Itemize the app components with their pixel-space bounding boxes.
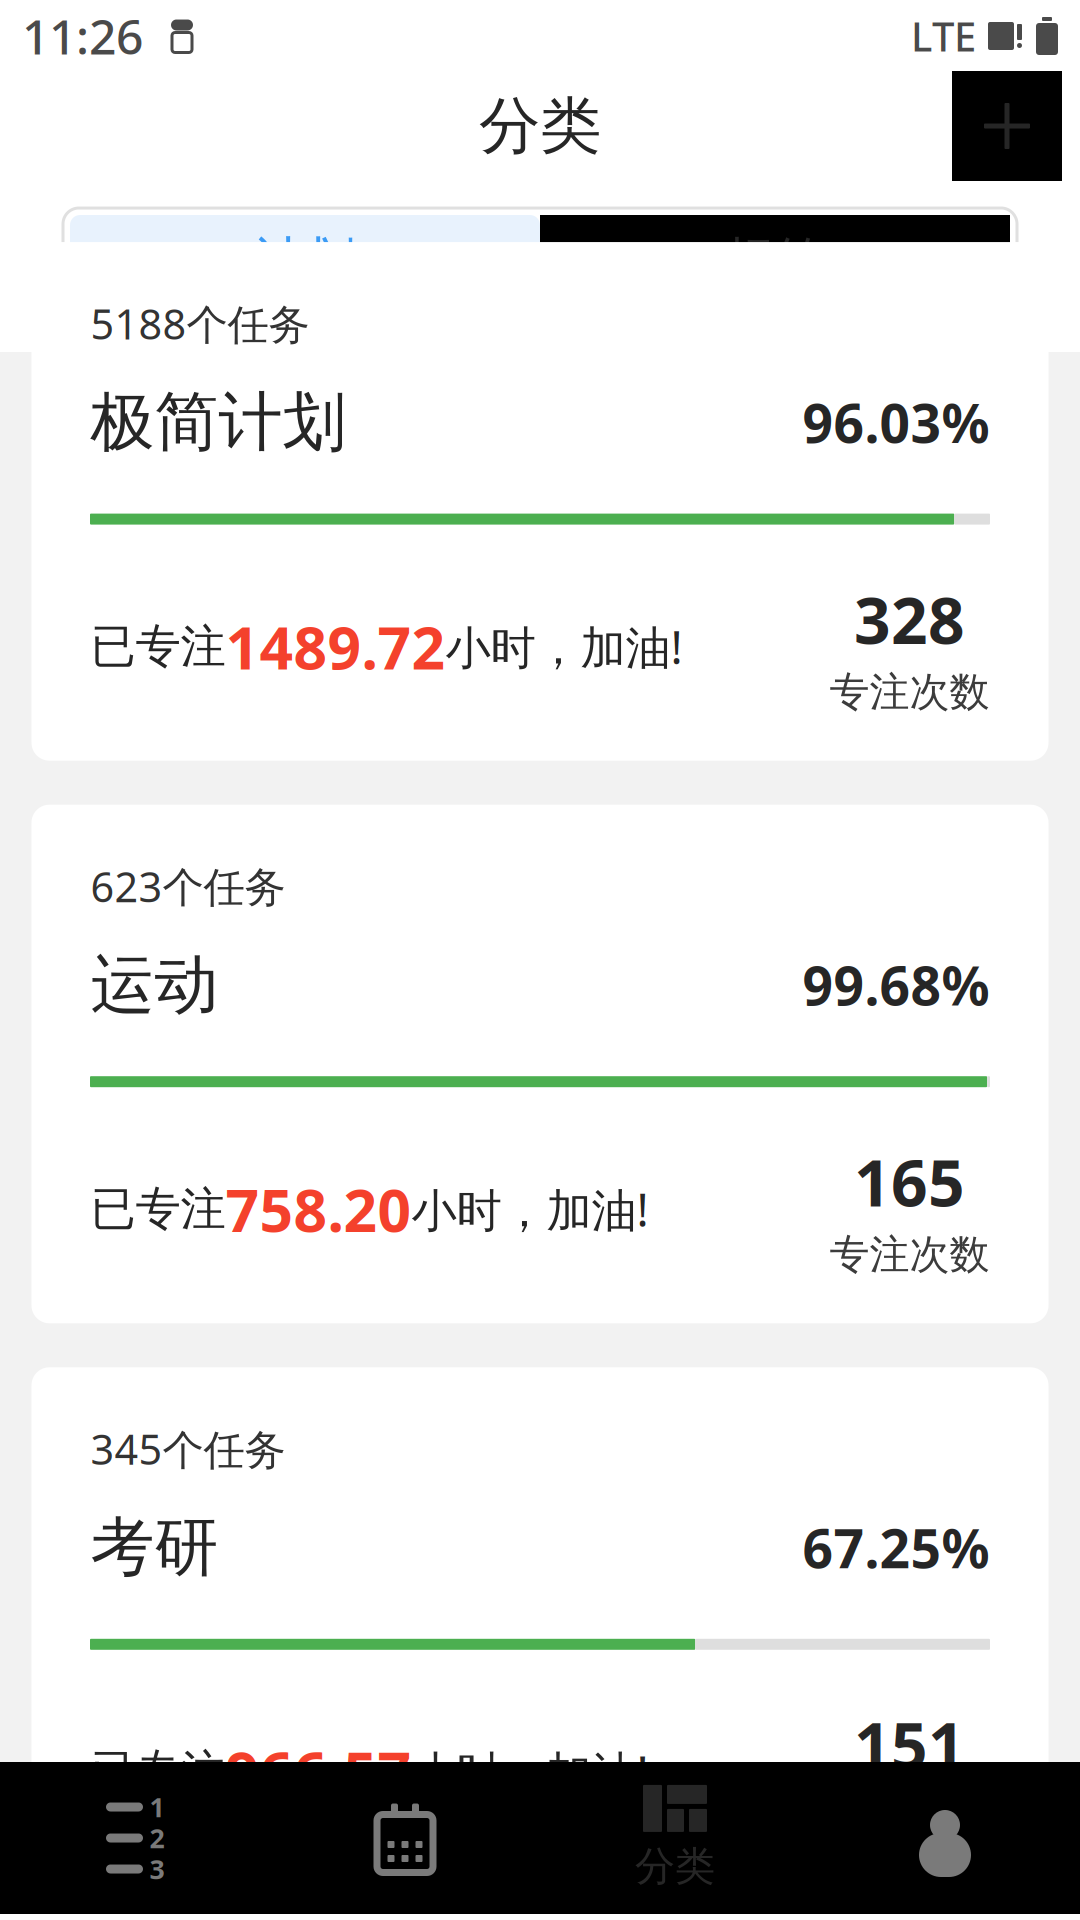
- staticText: LTE: [911, 9, 976, 62]
- staticText: 966.57: [225, 1733, 411, 1811]
- button[interactable]: Calendar: [270, 1762, 540, 1914]
- button[interactable]: Profile: [810, 1762, 1080, 1914]
- staticText: 分类: [479, 88, 601, 164]
- staticText: 151: [854, 1702, 965, 1787]
- staticText: 专注次数: [829, 668, 989, 717]
- staticText: 专注次数: [829, 1793, 989, 1842]
- staticText: 考研: [90, 1508, 218, 1587]
- staticText: 小时，加油!: [445, 616, 682, 677]
- staticText: 1489.72: [225, 608, 445, 686]
- button[interactable]: 5188个任务: [31, 242, 1048, 761]
- button[interactable]: 计划: [70, 215, 540, 307]
- staticText: 328: [854, 577, 965, 662]
- staticText: 623个任务: [90, 859, 285, 914]
- staticText: 极简计划: [90, 383, 346, 462]
- button[interactable]: Tasks: [0, 1762, 270, 1914]
- staticText: 96.03%: [802, 387, 989, 458]
- staticText: 标签: [724, 230, 826, 292]
- staticText: 1: [149, 1789, 164, 1825]
- staticText: 11:26: [22, 4, 143, 68]
- staticText: 165: [854, 1139, 965, 1224]
- staticText: 已专注: [90, 619, 225, 674]
- staticText: 计划: [254, 230, 356, 292]
- staticText: 345个任务: [90, 1421, 285, 1476]
- staticText: 小时，加油!: [411, 1179, 648, 1239]
- staticText: 758.20: [225, 1170, 411, 1248]
- button[interactable]: 345个任务: [31, 1367, 1048, 1886]
- button[interactable]: 分类: [540, 1762, 810, 1914]
- button[interactable]: 标签: [540, 215, 1010, 307]
- staticText: 运动: [90, 946, 218, 1024]
- staticText: 99.68%: [802, 949, 989, 1020]
- button[interactable]: Add category: [952, 71, 1062, 181]
- button[interactable]: 623个任务: [31, 805, 1048, 1323]
- staticText: 已专注: [90, 1744, 225, 1800]
- staticText: 专注次数: [829, 1230, 989, 1279]
- staticText: 5188个任务: [90, 296, 309, 351]
- staticText: 3: [149, 1851, 164, 1887]
- staticText: 2: [149, 1820, 164, 1856]
- staticText: 小时，加油!: [411, 1742, 648, 1802]
- staticText: 67.25%: [802, 1512, 989, 1583]
- staticText: 分类: [635, 1842, 715, 1891]
- staticText: 已专注: [90, 1181, 225, 1237]
